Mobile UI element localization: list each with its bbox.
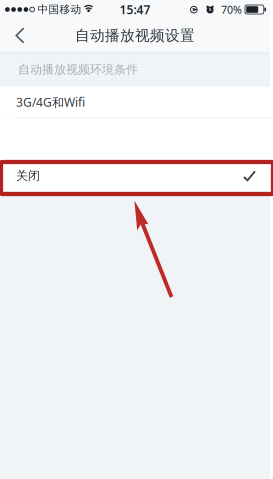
button[interactable]: 关闭 [0, 160, 270, 191]
staticText: 自动播放视频设置 [75, 26, 195, 44]
staticText: 15:47 [119, 1, 150, 17]
button[interactable]: 3G/4G和Wifi [0, 87, 270, 118]
staticText: 中国移动 [37, 3, 81, 16]
staticText: 3G/4G和Wifi [16, 94, 85, 110]
button[interactable]: Back [0, 19, 40, 52]
staticText: 自动播放视频环境条件 [18, 62, 138, 77]
staticText: 关闭 [16, 168, 40, 183]
staticText: 70% [221, 2, 242, 17]
